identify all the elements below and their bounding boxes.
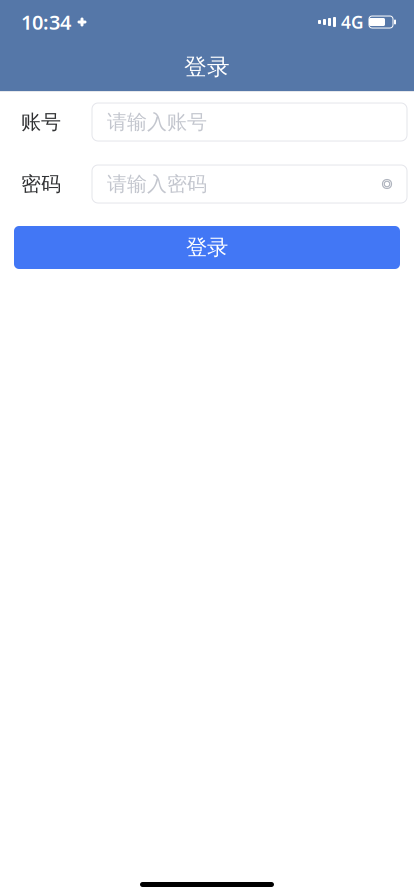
- staticText: 请输入密码: [107, 172, 207, 196]
- staticText: 请输入账号: [107, 110, 207, 134]
- staticText: 登录: [186, 234, 228, 261]
- staticText: 密码: [21, 172, 61, 196]
- staticText: 账号: [21, 110, 61, 134]
- button[interactable]: 登录: [14, 226, 400, 269]
- staticText: 登录: [184, 53, 230, 81]
- button[interactable]: 显示密码: [373, 165, 401, 203]
- staticText: 10:34: [21, 9, 71, 35]
- staticText: 4G: [341, 10, 364, 33]
